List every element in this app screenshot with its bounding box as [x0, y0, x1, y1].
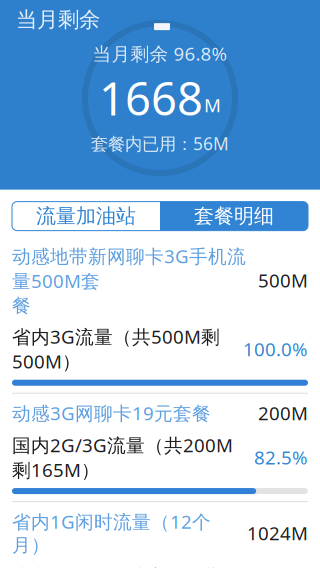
staticText: 省内1G闲时流量（12个月）	[12, 509, 211, 557]
button[interactable]: 套餐明细	[160, 202, 308, 231]
staticText: 500M	[258, 268, 308, 293]
button[interactable]: 动感地带新网聊卡3G手机流量500M套	[0, 237, 320, 394]
staticText: 200M	[258, 401, 308, 425]
staticText: 100.0%	[243, 336, 308, 361]
staticText: M	[204, 93, 221, 117]
staticText: 餐	[12, 294, 31, 317]
staticText: 动感3G网聊卡19元套餐	[12, 401, 211, 425]
staticText: 1024M	[247, 520, 308, 545]
staticText: 省内3G流量（共500M剩500M）	[12, 324, 220, 374]
staticText: 82.5%	[254, 445, 308, 470]
button[interactable]: 省内1G闲时流量（12个月）	[0, 502, 320, 568]
staticText: 当月剩余	[16, 7, 100, 33]
staticText: 国内2G/3G流量（共200M剩165M）	[12, 432, 233, 482]
staticText: 1668	[99, 68, 203, 128]
staticText: 套餐明细	[194, 204, 274, 228]
staticText: 套餐内已用：56M	[91, 132, 229, 155]
staticText: 当月剩余 96.8%	[92, 41, 227, 66]
button[interactable]: 动感3G网聊卡19元套餐	[0, 394, 320, 502]
staticText: 流量加油站	[36, 204, 136, 228]
button[interactable]: 流量加油站	[12, 202, 160, 231]
staticText: 动感地带新网聊卡3G手机流量500M套	[12, 244, 246, 293]
